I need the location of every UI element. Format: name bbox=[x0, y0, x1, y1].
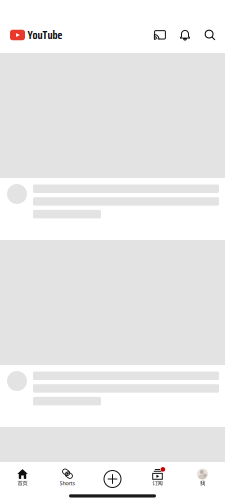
button[interactable]: Cast bbox=[147, 18, 172, 52]
button[interactable]: Create bbox=[90, 460, 135, 493]
button[interactable]: Search bbox=[197, 18, 222, 52]
button[interactable]: Shorts bbox=[45, 460, 90, 493]
button[interactable]: 首页 bbox=[0, 460, 45, 493]
button[interactable]: 订阅 bbox=[135, 460, 180, 493]
staticText: 订阅 bbox=[152, 480, 162, 487]
staticText: YouTube bbox=[27, 26, 62, 44]
button[interactable]: YouTube bbox=[0, 20, 62, 50]
staticText: 我 bbox=[200, 480, 205, 487]
button[interactable]: 我 bbox=[180, 460, 225, 493]
button[interactable]: Notifications bbox=[172, 18, 197, 52]
staticText: 首页 bbox=[17, 480, 27, 487]
staticText: Shorts bbox=[59, 480, 75, 487]
